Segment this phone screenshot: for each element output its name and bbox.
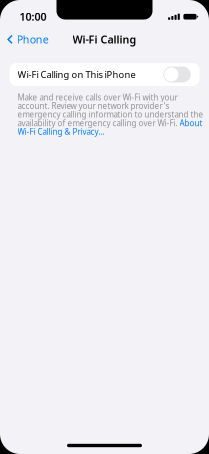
- button[interactable]: About: [179, 119, 202, 127]
- staticText: Make and receive calls over Wi-Fi with y…: [17, 92, 177, 103]
- staticText: account. Review your network provider's: [17, 101, 169, 111]
- staticText: About: [179, 118, 202, 128]
- staticText: availability of emergency calling over W…: [17, 118, 179, 128]
- staticText: emergency calling information to underst…: [17, 109, 203, 120]
- button[interactable]: Wi-Fi Calling & Privacy...: [17, 127, 104, 136]
- button[interactable]: Wi-Fi Calling on This iPhone: [9, 63, 199, 86]
- staticText: Wi-Fi Calling: [72, 32, 136, 46]
- button[interactable]: Phone: [0, 28, 53, 50]
- staticText: Phone: [17, 32, 49, 46]
- staticText: Wi-Fi Calling & Privacy...: [17, 126, 104, 137]
- staticText: Wi-Fi Calling on This iPhone: [17, 68, 135, 81]
- staticText: 10:00: [19, 10, 46, 24]
